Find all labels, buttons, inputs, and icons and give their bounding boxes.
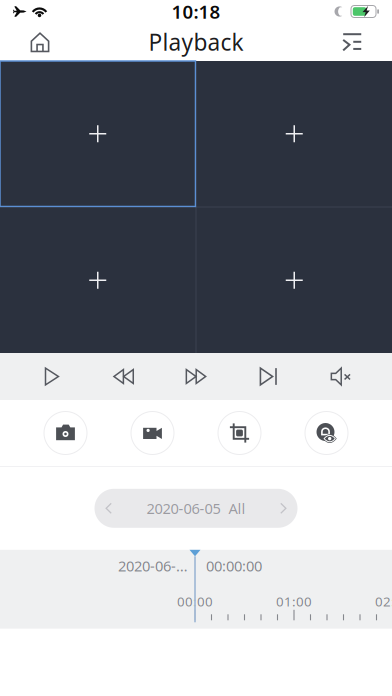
staticText: 02:00 (375, 592, 392, 610)
button[interactable]: Play (15, 353, 87, 400)
button[interactable]: PTZ (297, 404, 355, 462)
button[interactable]: Record (123, 404, 181, 462)
button[interactable]: Snapshot (36, 404, 94, 462)
staticText: 00:00 (177, 592, 213, 610)
button[interactable]: Mute (305, 353, 377, 400)
button[interactable]: Home (17, 23, 63, 61)
button[interactable]: 2020-06-05 All (94, 489, 297, 528)
button[interactable]: Channel list (329, 23, 375, 61)
button[interactable]: Fast forward (160, 353, 232, 400)
button[interactable]: Digital zoom (210, 404, 268, 462)
button[interactable]: Rewind (87, 353, 160, 400)
staticText: Playback (148, 27, 243, 57)
staticText: 2020-06-05 All (146, 499, 245, 518)
button[interactable]: Next frame (232, 353, 305, 400)
staticText: 10:18 (171, 0, 220, 24)
staticText: 00:00:00 (206, 556, 262, 576)
staticText: 2020-06-… (118, 556, 188, 576)
staticText: 01:00 (276, 592, 312, 610)
